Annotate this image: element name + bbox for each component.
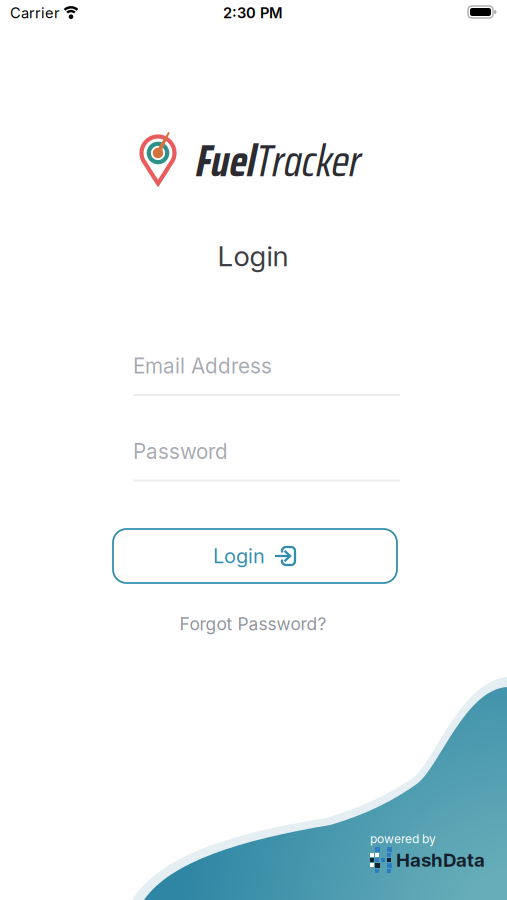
button[interactable]: Login [113,529,397,583]
staticText: Email Address [133,353,272,378]
staticText: Fuel [196,126,256,196]
button[interactable]: Forgot Password? [179,613,326,634]
staticText: Forgot Password? [179,613,326,634]
staticText: 2:30 PM [223,4,283,22]
staticText: Login [217,239,288,273]
button[interactable]: Email Address [133,352,400,396]
staticText: Login [213,544,265,568]
staticText: HashData [396,849,485,871]
button[interactable]: Password [133,437,400,481]
staticText: Carrier [10,4,60,22]
staticText: powered by [370,832,436,846]
staticText: Tracker [256,126,361,196]
staticText: Password [133,439,228,464]
